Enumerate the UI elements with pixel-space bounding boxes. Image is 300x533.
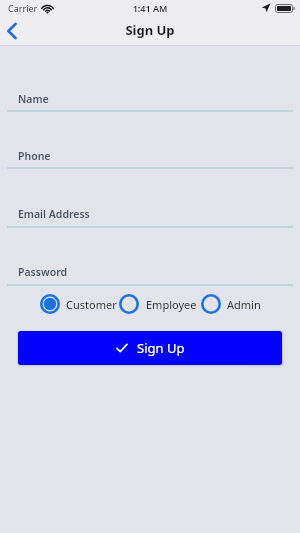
staticText: Sign Up [0, 21, 300, 39]
button[interactable]: Email Address [7, 203, 293, 230]
staticText: Password [18, 265, 68, 279]
button[interactable]: Phone [7, 145, 293, 171]
button[interactable] [0, 18, 34, 45]
button[interactable]: Admin [201, 294, 261, 314]
staticText: Email Address [18, 207, 90, 221]
button[interactable]: Name [7, 88, 293, 114]
button[interactable]: Customer [40, 294, 117, 314]
staticText: 1:41 AM [0, 2, 300, 14]
staticText: Name [18, 92, 49, 106]
staticText: Customer [66, 297, 117, 312]
staticText: Phone [18, 149, 51, 163]
button[interactable]: Employee [119, 294, 197, 314]
staticText: Employee [146, 297, 197, 312]
staticText: Sign Up [137, 339, 185, 357]
button[interactable]: Sign Up [18, 331, 282, 365]
button[interactable]: Password [7, 261, 293, 288]
staticText: Carrier [8, 2, 38, 14]
staticText: Admin [227, 297, 261, 312]
